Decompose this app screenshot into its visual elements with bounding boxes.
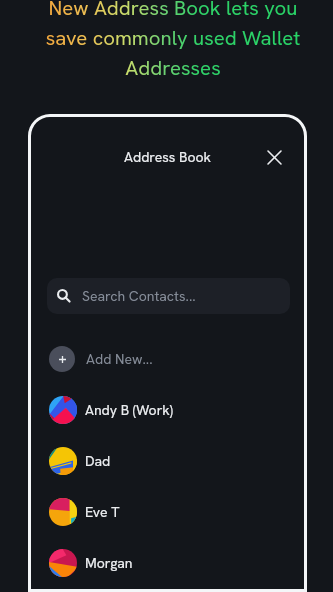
staticText: Search Contacts... <box>82 287 196 305</box>
staticText: Address Book <box>124 148 212 166</box>
staticText: Andy B (Work) <box>85 401 173 419</box>
button[interactable]: Search Contacts... <box>47 278 290 314</box>
staticText: Morgan <box>85 554 133 572</box>
staticText: New Address Book lets you save commonly … <box>44 0 302 81</box>
staticText: Eve T <box>85 503 120 521</box>
staticText: Dad <box>85 452 111 470</box>
button[interactable]: Morgan <box>28 537 307 588</box>
staticText: Add New... <box>86 350 153 368</box>
button[interactable]: Dad <box>28 435 307 486</box>
button[interactable]: Add New... <box>28 333 307 384</box>
button[interactable]: Andy B (Work) <box>28 384 307 435</box>
button[interactable]: Close <box>262 145 286 169</box>
button[interactable]: Eve T <box>28 486 307 537</box>
